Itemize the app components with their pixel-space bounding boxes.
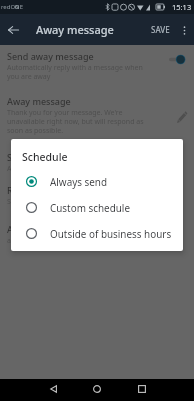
button[interactable]: Always send — [11, 168, 183, 194]
button[interactable]: Edit away message — [174, 109, 190, 125]
button[interactable]: Recent apps — [132, 379, 152, 399]
button[interactable]: More options — [174, 20, 194, 40]
staticText: Always send — [7, 164, 48, 174]
staticText: Always send — [50, 175, 108, 188]
staticText: Outside of business hours — [50, 227, 172, 240]
button[interactable]: Away status — [0, 218, 194, 258]
button[interactable]: Back — [43, 379, 63, 399]
button[interactable]: Recipients — [0, 179, 194, 221]
button[interactable]: Back — [3, 20, 23, 40]
button[interactable]: SAVE — [147, 16, 174, 43]
staticText: Custom schedule — [50, 201, 130, 214]
button[interactable]: Away message — [0, 90, 194, 136]
staticText: Schedule — [22, 150, 68, 164]
staticText: active now — [7, 236, 42, 246]
button[interactable]: Send away message — [0, 45, 194, 89]
staticText: redONE — [1, 3, 24, 11]
staticText: Away message — [36, 22, 114, 37]
button[interactable]: Schedule — [0, 146, 194, 179]
staticText: Away status — [7, 223, 59, 235]
staticText: Automatically reply with a message when … — [7, 63, 153, 81]
staticText: Recipients — [7, 184, 52, 196]
button[interactable]: Custom schedule — [11, 194, 183, 220]
staticText: Thank you for your message. We're unavai… — [7, 108, 157, 135]
staticText: Away message — [7, 95, 71, 107]
staticText: 15:13 — [172, 2, 192, 12]
button[interactable]: Outside of business hours — [11, 220, 183, 246]
staticText: Schedule — [7, 151, 46, 163]
button[interactable]: Home — [87, 379, 107, 399]
staticText: Send to all of my contacts — [7, 197, 92, 207]
staticText: Send away message — [7, 50, 94, 62]
staticText: SAVE — [151, 24, 170, 35]
